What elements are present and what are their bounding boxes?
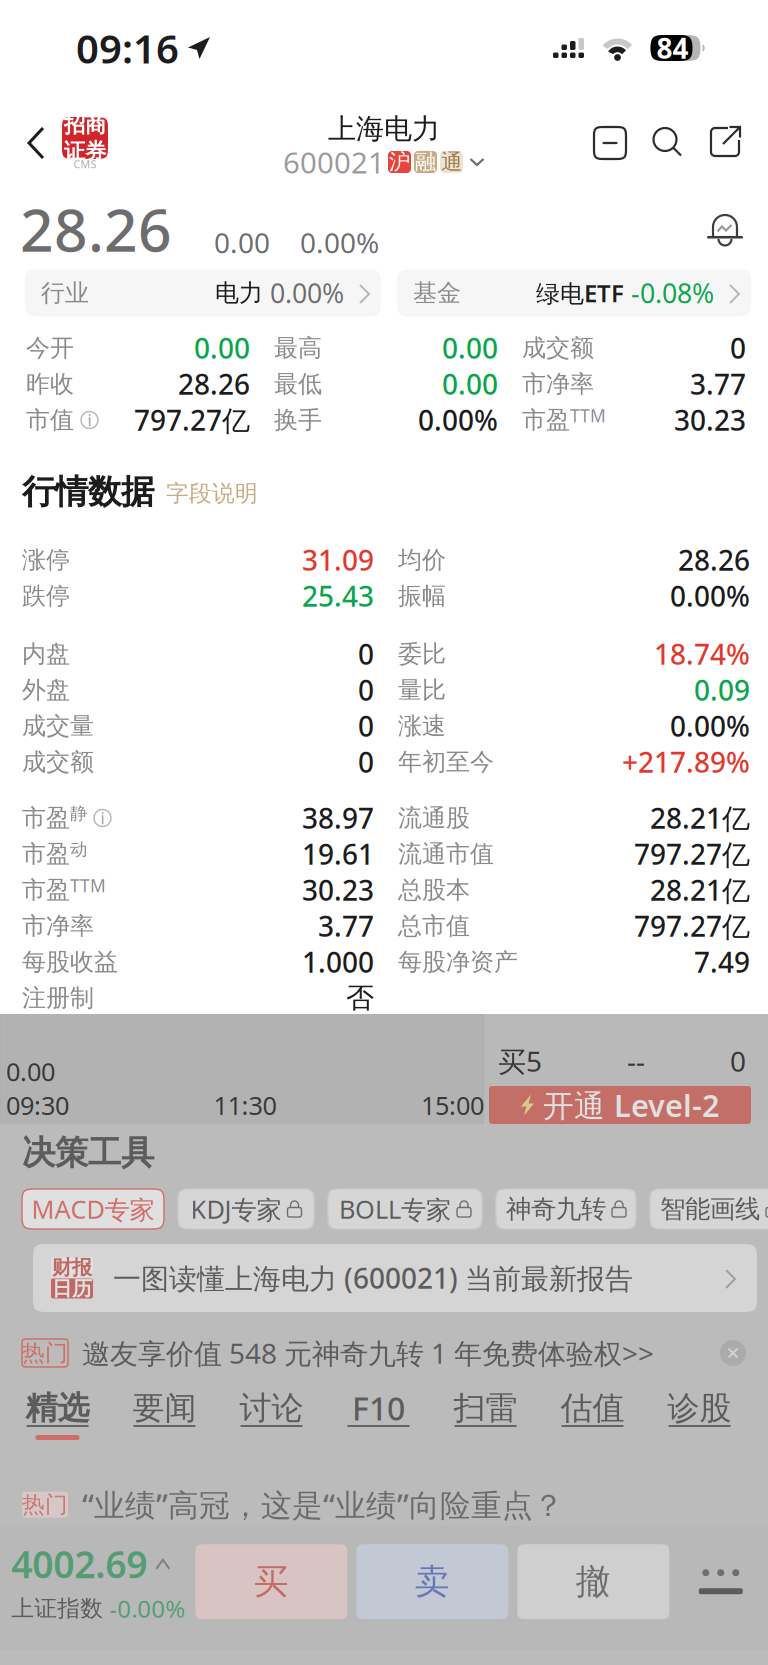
staticText: 15:00 (421, 1088, 484, 1122)
button[interactable]: KDJ专家 (178, 1189, 314, 1229)
staticText: 600021 (283, 142, 385, 181)
staticText: 一图读懂上海电力 (600021) 当前最新报告 (113, 1259, 633, 1297)
button[interactable]: F10 (325, 1391, 432, 1479)
staticText: 委比 (398, 639, 446, 669)
staticText: 09:16 (76, 21, 179, 74)
staticText: 0 (358, 743, 374, 781)
button[interactable]: 神奇九转 (496, 1189, 636, 1229)
button[interactable]: 撤 (517, 1544, 669, 1619)
staticText: 0 (358, 671, 374, 709)
staticText: i (100, 807, 104, 829)
staticText: 邀友享价值 548 元神奇九转 1 年免费体验权>> (82, 1334, 654, 1372)
staticText: 年初至今 (398, 747, 494, 777)
staticText: 静 (70, 803, 87, 824)
staticText: 797.27亿 (634, 835, 750, 873)
staticText: 0.00% (670, 707, 750, 745)
staticText: 最低 (274, 369, 322, 399)
staticText: 3.77 (690, 365, 746, 403)
staticText: 行业 (41, 278, 89, 308)
staticText: 0.00 (6, 1055, 55, 1088)
button[interactable]: 开通 Level-2 (489, 1086, 751, 1124)
staticText: BOLL专家 (339, 1192, 451, 1226)
button[interactable]: 讨论 (218, 1391, 325, 1479)
staticText: 0.00 (194, 329, 250, 367)
staticText: 昨收 (26, 369, 74, 399)
staticText: 今开 (26, 333, 74, 363)
staticText: 动 (70, 839, 87, 860)
staticText: 7.49 (694, 943, 750, 981)
staticText: 日历 (52, 1276, 92, 1301)
staticText: 神奇九转 (506, 1193, 606, 1224)
staticText: 换手 (274, 405, 322, 435)
staticText: 797.27亿 (134, 401, 250, 439)
button[interactable]: BOLL专家 (328, 1189, 482, 1229)
staticText: TTM (570, 404, 606, 427)
button[interactable]: 字段说明 (166, 477, 258, 507)
staticText: 0.00% (418, 401, 498, 439)
staticText: 总股本 (398, 875, 470, 905)
button[interactable]: Dismiss (720, 1340, 746, 1366)
button[interactable]: 诊股 (646, 1391, 753, 1479)
staticText: 0 (730, 329, 746, 367)
staticText: 诊股 (667, 1388, 731, 1428)
staticText: 招商 证券 (64, 112, 106, 164)
staticText: 决策工具 (22, 1132, 154, 1173)
staticText: 成交量 (22, 711, 94, 741)
staticText: 28.21亿 (650, 871, 750, 909)
staticText: 开通 Level-2 (543, 1085, 720, 1125)
staticText: 绿电ETF (536, 277, 624, 309)
button[interactable]: 基金 (397, 269, 751, 316)
staticText: 沪 (389, 149, 410, 175)
staticText: 09:30 (6, 1088, 69, 1122)
staticText: 行情数据 (22, 471, 154, 512)
staticText: 38.97 (302, 799, 374, 837)
staticText: 最高 (274, 333, 322, 363)
button[interactable]: 买 (195, 1544, 347, 1619)
staticText: 0.00% (670, 577, 750, 615)
staticText: 注册制 (22, 983, 94, 1013)
staticText: 估值 (560, 1388, 624, 1428)
staticText: 涨速 (398, 711, 446, 741)
button[interactable]: Back (0, 126, 62, 160)
staticText: 热门 (22, 1339, 68, 1367)
button[interactable]: 行业 (25, 269, 381, 316)
button[interactable]: 扫雷 (432, 1391, 539, 1479)
button[interactable]: 智能画线 (650, 1189, 768, 1229)
staticText: 0.00% (300, 224, 379, 261)
button[interactable]: 招商证券 (62, 117, 108, 169)
staticText: -0.00% (109, 1593, 185, 1624)
staticText: “业绩”高冠，这是“业绩”向险重点？ (82, 1484, 564, 1525)
button[interactable]: Search (650, 125, 686, 161)
staticText: 上证指数 (11, 1595, 103, 1622)
button[interactable]: 估值 (539, 1391, 646, 1479)
staticText: 0.00 (442, 365, 498, 403)
staticText: 30.23 (302, 871, 374, 909)
staticText: 讨论 (239, 1388, 303, 1428)
button[interactable]: Price alert (706, 212, 746, 268)
staticText: TTM (70, 874, 106, 897)
staticText: 4002.69 (11, 1539, 147, 1589)
staticText: 成交额 (22, 747, 94, 777)
staticText: 市盈 (22, 875, 70, 905)
staticText: 18.74% (654, 635, 750, 673)
staticText: 市盈 (522, 405, 570, 435)
staticText: 流通股 (398, 803, 470, 833)
staticText: 797.27亿 (634, 907, 750, 945)
staticText: 买 (254, 1560, 289, 1603)
button[interactable]: More (678, 1544, 764, 1619)
button[interactable]: Share (708, 125, 744, 161)
staticText: CMS (73, 157, 96, 171)
button[interactable]: 精选 (4, 1391, 111, 1479)
button[interactable]: MACD专家 (22, 1189, 164, 1229)
button[interactable]: 卖 (356, 1544, 508, 1619)
staticText: 市盈 (22, 839, 70, 869)
button[interactable]: 要闻 (111, 1391, 218, 1479)
button[interactable]: Remove from list (592, 125, 628, 161)
staticText: 财报 (52, 1255, 92, 1280)
staticText: 28.26 (678, 541, 750, 579)
staticText: 31.09 (302, 541, 374, 579)
staticText: 通 (441, 149, 462, 175)
staticText: 0 (358, 707, 374, 745)
button[interactable]: 财报 (11, 1244, 757, 1312)
